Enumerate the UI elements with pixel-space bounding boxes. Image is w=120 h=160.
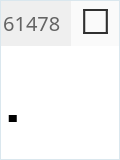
button[interactable]: Stop [82,8,110,36]
button[interactable]: 61478 [0,0,71,46]
button[interactable]: Marker [5,111,21,125]
staticText: 61478 [3,10,61,37]
